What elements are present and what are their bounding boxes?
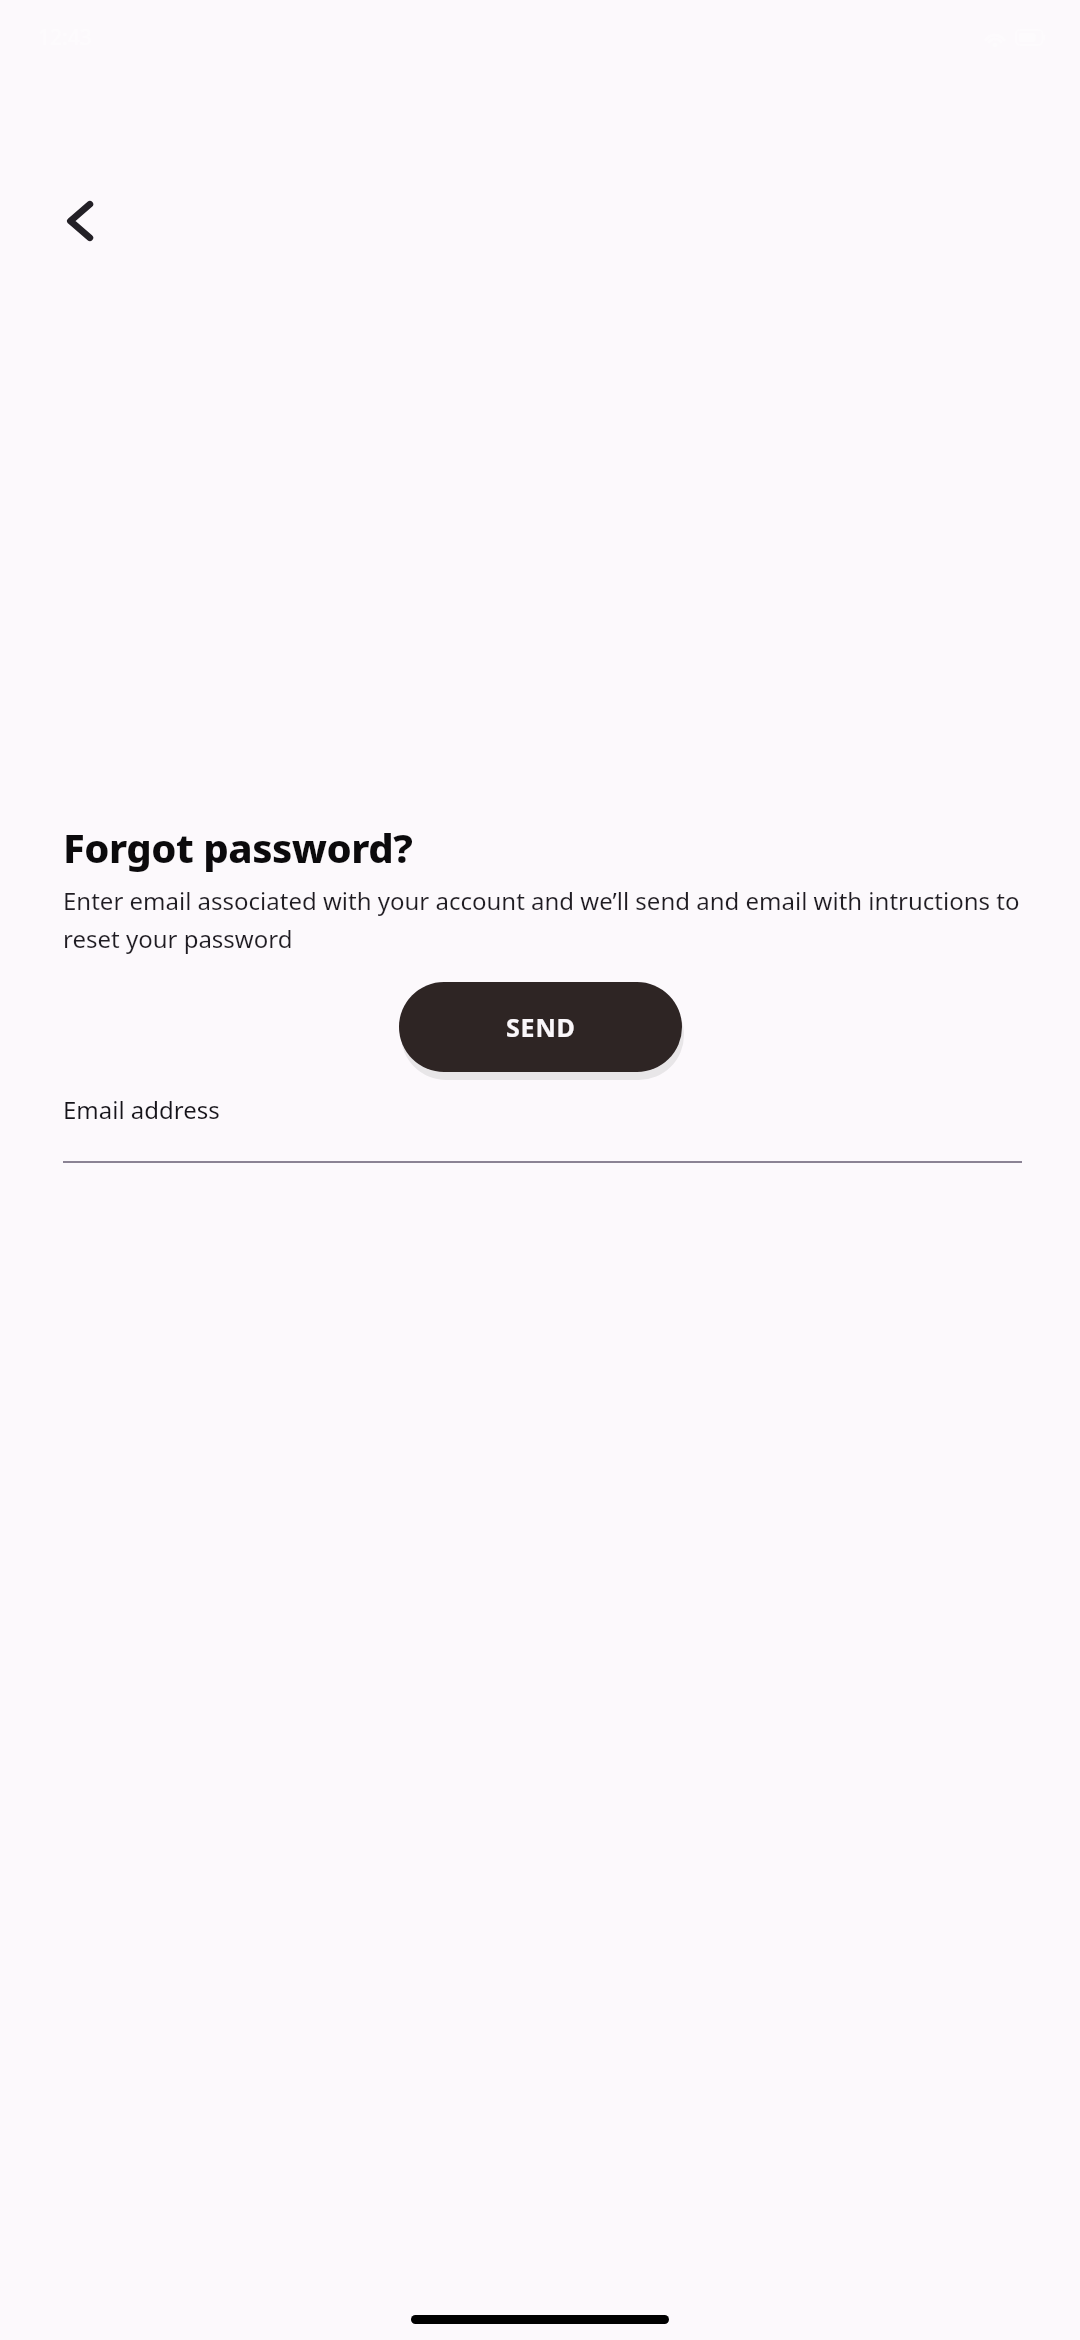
- staticText: Email address: [63, 1093, 220, 1126]
- staticText: Forgot password?: [63, 820, 413, 874]
- button[interactable]: Email address: [63, 1093, 1022, 1163]
- button[interactable]: SEND: [399, 982, 682, 1072]
- button[interactable]: Back: [26, 166, 136, 276]
- staticText: Enter email associated with your account…: [63, 884, 1022, 955]
- staticText: SEND: [506, 1010, 576, 1044]
